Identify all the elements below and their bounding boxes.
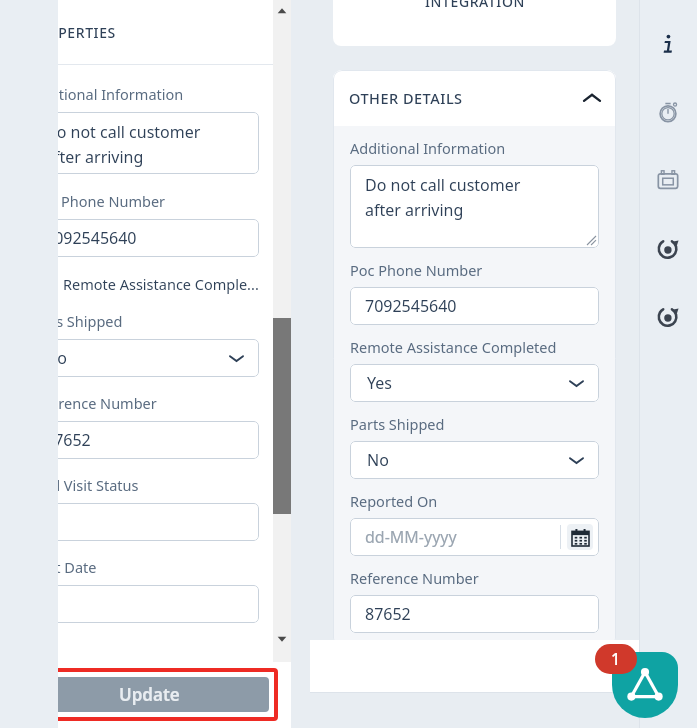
button[interactable]: Do not call customer bbox=[350, 165, 599, 248]
button[interactable]: Calendar bbox=[648, 160, 688, 200]
staticText: 7092545640 bbox=[45, 227, 137, 249]
button[interactable]: 1 notification bbox=[595, 644, 637, 674]
button[interactable] bbox=[28, 585, 259, 623]
staticText: Parts Shipped bbox=[350, 414, 445, 434]
staticText: Yes bbox=[367, 372, 392, 394]
staticText: 87652 bbox=[365, 603, 411, 625]
staticText: OTHER DETAILS bbox=[349, 88, 463, 108]
button[interactable]: Assistant bbox=[612, 652, 678, 718]
staticText: No bbox=[367, 449, 389, 471]
button[interactable]: History bbox=[648, 228, 688, 268]
button[interactable]: Yes bbox=[350, 364, 599, 402]
staticText: Start Date bbox=[28, 557, 97, 577]
button[interactable]: 7092545640 bbox=[350, 287, 599, 325]
staticText: Reported On bbox=[350, 491, 438, 511]
staticText: POC Phone Number bbox=[28, 191, 166, 211]
button[interactable]: 7092545640 bbox=[28, 219, 259, 257]
button[interactable]: Timer bbox=[648, 92, 688, 132]
staticText: Parts Shipped bbox=[28, 311, 123, 331]
staticText: Do not call customer bbox=[365, 174, 521, 196]
staticText: after arriving bbox=[45, 146, 144, 168]
staticText: PROPERTIES bbox=[28, 23, 116, 42]
button[interactable]: OTHER DETAILS bbox=[333, 70, 616, 126]
staticText: after arriving bbox=[365, 199, 464, 221]
staticText: Do not call customer bbox=[45, 121, 201, 143]
staticText: No bbox=[45, 347, 67, 369]
staticText: Reference Number bbox=[350, 568, 479, 588]
staticText: Remote Assistance Completed bbox=[350, 337, 557, 357]
staticText: Additional Information bbox=[350, 138, 506, 158]
button[interactable]: Information bbox=[648, 24, 688, 64]
staticText: INTEGRATION bbox=[425, 0, 525, 11]
button[interactable]: No bbox=[28, 339, 259, 377]
button[interactable]: Activity bbox=[648, 296, 688, 336]
staticText: Poc Phone Number bbox=[350, 260, 483, 280]
staticText: 1 bbox=[611, 648, 621, 670]
staticText: Update bbox=[119, 683, 180, 706]
staticText: 87652 bbox=[45, 429, 91, 451]
button[interactable] bbox=[28, 503, 259, 541]
staticText: Additional Information bbox=[28, 84, 184, 104]
staticText: Remote Assistance Comple... bbox=[63, 274, 259, 294]
button[interactable]: No bbox=[350, 441, 599, 479]
button[interactable]: dd-MM-yyyy bbox=[350, 518, 599, 556]
staticText: dd-MM-yyyy bbox=[365, 526, 457, 548]
staticText: 7092545640 bbox=[365, 295, 457, 317]
staticText: Reference Number bbox=[28, 393, 157, 413]
button[interactable]: 87652 bbox=[28, 421, 259, 459]
button[interactable]: 87652 bbox=[350, 595, 599, 633]
button[interactable]: Do not call customer bbox=[28, 112, 259, 174]
staticText: Field Visit Status bbox=[28, 475, 139, 495]
other: Collapse bbox=[584, 90, 600, 106]
button[interactable]: Remote Assistance Comple... bbox=[28, 271, 259, 297]
button[interactable]: Pick date bbox=[567, 524, 593, 550]
button[interactable]: Update bbox=[29, 677, 269, 712]
